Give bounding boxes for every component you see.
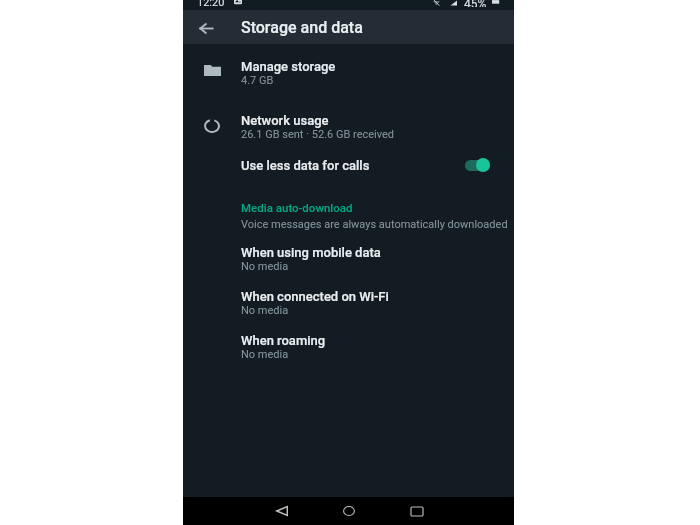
staticText: Manage storage	[241, 59, 336, 74]
button[interactable]: When connected on Wi-Fi	[183, 282, 514, 326]
button[interactable]: Manage storage	[183, 52, 514, 96]
staticText: When roaming	[241, 333, 326, 348]
button[interactable]: Network usage	[183, 106, 514, 150]
staticText: Storage and data	[241, 18, 363, 37]
staticText: Media auto-download	[241, 201, 353, 214]
staticText: No media	[241, 260, 289, 273]
button[interactable]: Back	[260, 497, 304, 525]
button[interactable]: Use less data for calls	[183, 152, 514, 180]
staticText: 45%	[464, 0, 487, 7]
button[interactable]: Recent apps	[395, 497, 439, 525]
button[interactable]: Back	[189, 10, 223, 44]
button[interactable]: Home	[327, 497, 371, 525]
staticText: Use less data for calls	[241, 158, 370, 173]
staticText: 12:20	[197, 0, 225, 6]
staticText: No media	[241, 304, 289, 317]
staticText: No media	[241, 348, 289, 361]
staticText: When connected on Wi-Fi	[241, 289, 389, 304]
staticText: 4.7 GB	[241, 74, 274, 87]
staticText: 26.1 GB sent · 52.6 GB received	[241, 128, 395, 141]
staticText: Network usage	[241, 113, 329, 128]
staticText: Voice messages are always automatically …	[241, 218, 508, 231]
button[interactable]: When roaming	[183, 326, 514, 370]
button[interactable]: Use less data for calls	[464, 158, 492, 172]
staticText: When using mobile data	[241, 245, 381, 260]
button[interactable]: When using mobile data	[183, 238, 514, 282]
